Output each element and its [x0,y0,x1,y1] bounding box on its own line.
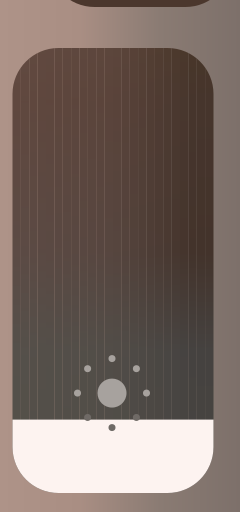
button[interactable]: Brightness [12,48,213,493]
